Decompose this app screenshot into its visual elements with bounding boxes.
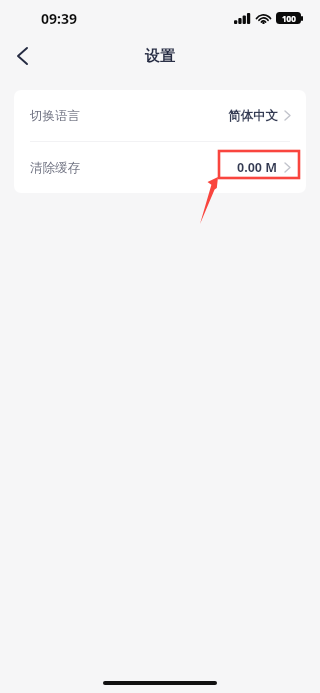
staticText: 100	[282, 13, 296, 24]
staticText: 0.00 M	[237, 159, 278, 176]
staticText: 09:39	[41, 9, 77, 28]
staticText: 清除缓存	[30, 160, 80, 176]
staticText: 简体中文	[228, 108, 278, 124]
button[interactable]: 清除缓存	[14, 142, 306, 193]
button[interactable]: 切换语言	[14, 90, 306, 141]
staticText: 设置	[145, 47, 175, 66]
button[interactable]: Back	[0, 36, 44, 76]
staticText: 切换语言	[30, 108, 80, 124]
